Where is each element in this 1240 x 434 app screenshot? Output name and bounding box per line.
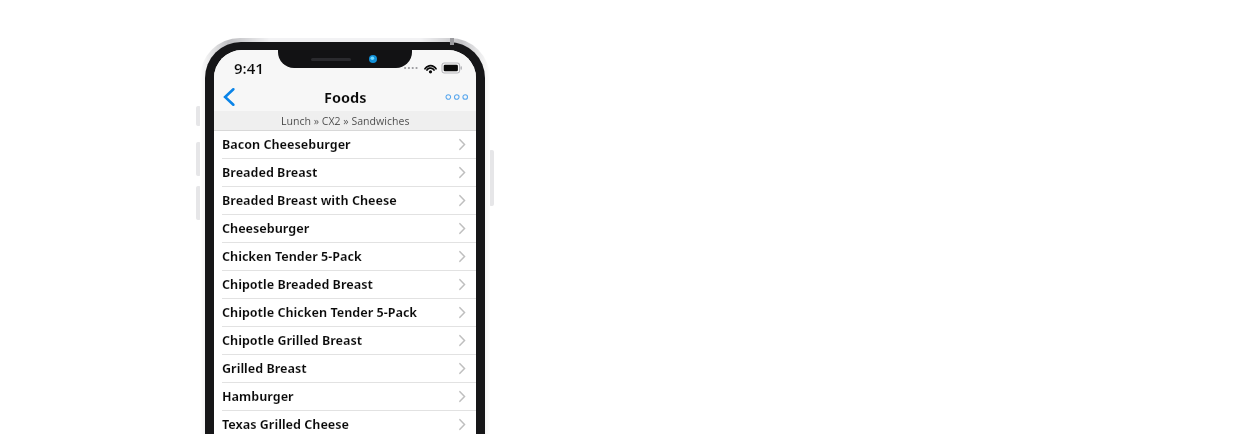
button[interactable]: Texas Grilled Cheese	[214, 411, 476, 434]
staticText: Lunch » CX2 » Sandwiches	[281, 114, 410, 128]
button[interactable]: Chipotle Chicken Tender 5-Pack	[214, 299, 476, 327]
staticText: Chipotle Chicken Tender 5-Pack	[222, 304, 418, 321]
button[interactable]: Lunch » CX2 » Sandwiches	[214, 111, 476, 130]
button[interactable]: Breaded Breast with Cheese	[214, 187, 476, 215]
button[interactable]: More options	[442, 82, 476, 111]
staticText: Foods	[324, 87, 367, 107]
staticText: Chipotle Grilled Breast	[222, 332, 363, 349]
button[interactable]: Back	[214, 82, 248, 111]
other: Mute switch	[196, 106, 201, 126]
staticText: Chipotle Breaded Breast	[222, 276, 373, 293]
staticText: Breaded Breast with Cheese	[222, 192, 397, 209]
staticText: Grilled Breast	[222, 360, 307, 377]
button[interactable]: Chipotle Grilled Breast	[214, 327, 476, 355]
button[interactable]: Grilled Breast	[214, 355, 476, 383]
other: Power	[489, 150, 494, 206]
button[interactable]: Bacon Cheeseburger	[214, 131, 476, 159]
staticText: Texas Grilled Cheese	[222, 416, 350, 433]
button[interactable]: Cheeseburger	[214, 215, 476, 243]
staticText: Chicken Tender 5-Pack	[222, 248, 362, 265]
staticText: 9:41	[234, 58, 264, 78]
staticText: Hamburger	[222, 388, 294, 405]
staticText: Cheeseburger	[222, 220, 310, 237]
button[interactable]: Hamburger	[214, 383, 476, 411]
button[interactable]: Breaded Breast	[214, 159, 476, 187]
staticText: Breaded Breast	[222, 164, 318, 181]
button[interactable]: Chicken Tender 5-Pack	[214, 243, 476, 271]
other: Volume up	[196, 142, 201, 176]
other: Volume down	[196, 186, 201, 220]
button[interactable]: Chipotle Breaded Breast	[214, 271, 476, 299]
staticText: Bacon Cheeseburger	[222, 136, 351, 153]
